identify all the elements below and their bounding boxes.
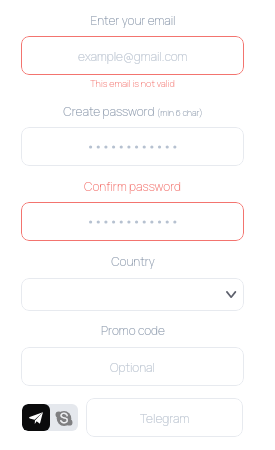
staticText: Optional <box>110 359 156 375</box>
button[interactable] <box>21 127 244 166</box>
staticText: Confirm password <box>84 178 181 194</box>
button[interactable]: example@gmail.com <box>21 36 244 75</box>
button[interactable]: Telegram <box>86 398 243 437</box>
button[interactable]: Optional <box>21 347 244 386</box>
staticText: Enter your email <box>90 12 176 28</box>
staticText: Promo code <box>101 322 165 338</box>
button[interactable]: Skype <box>50 404 78 431</box>
button[interactable] <box>21 202 244 241</box>
staticText: Create password (min 6 char) <box>63 103 203 119</box>
staticText: This email is not valid <box>90 77 175 90</box>
staticText: example@gmail.com <box>78 48 188 64</box>
staticText: S <box>60 409 68 427</box>
staticText: Telegram <box>140 410 190 426</box>
staticText: Country <box>111 253 155 269</box>
button[interactable]: Select country <box>21 278 244 311</box>
button[interactable]: Telegram <box>22 404 50 431</box>
